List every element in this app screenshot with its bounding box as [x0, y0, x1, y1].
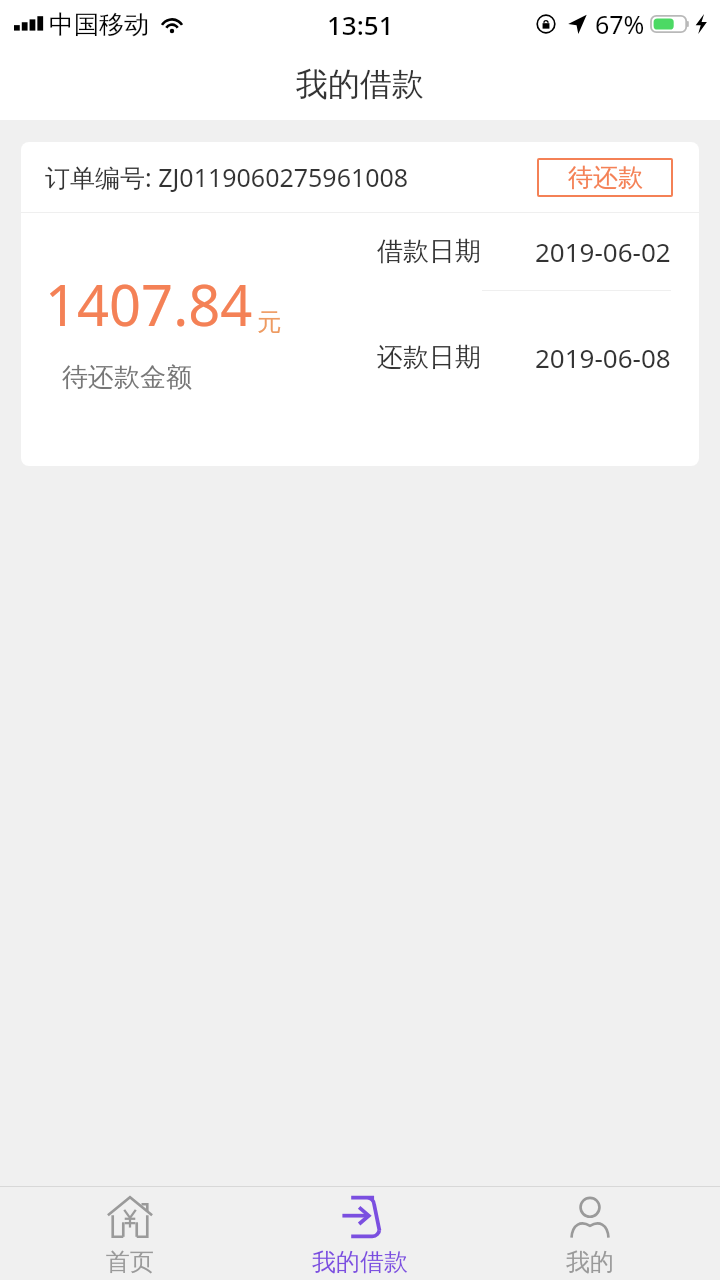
staticText: 1407.84	[45, 266, 253, 342]
staticText: 订单编号: ZJ0119060275961008	[45, 160, 409, 194]
staticText: 元	[257, 307, 281, 337]
button[interactable]: 我的借款	[260, 1187, 460, 1280]
button[interactable]: 我的	[490, 1187, 690, 1280]
staticText: 借款日期	[377, 235, 481, 268]
staticText: 待还款金额	[62, 361, 192, 394]
button[interactable]: 订单编号: ZJ0119060275961008	[21, 142, 699, 466]
staticText: 2019-06-02	[535, 234, 671, 269]
staticText: 2019-06-08	[535, 340, 671, 375]
button[interactable]: 待还款	[537, 158, 673, 197]
staticText: 我的借款	[312, 1247, 408, 1277]
staticText: 67%	[595, 7, 645, 41]
button[interactable]: 首页	[30, 1187, 230, 1280]
staticText: 我的	[566, 1247, 614, 1277]
staticText: 中国移动	[49, 9, 149, 40]
staticText: 13:51	[327, 7, 394, 42]
staticText: 首页	[106, 1247, 154, 1277]
staticText: 我的借款	[296, 64, 424, 104]
staticText: 还款日期	[377, 341, 481, 374]
staticText: 待还款	[568, 162, 643, 193]
